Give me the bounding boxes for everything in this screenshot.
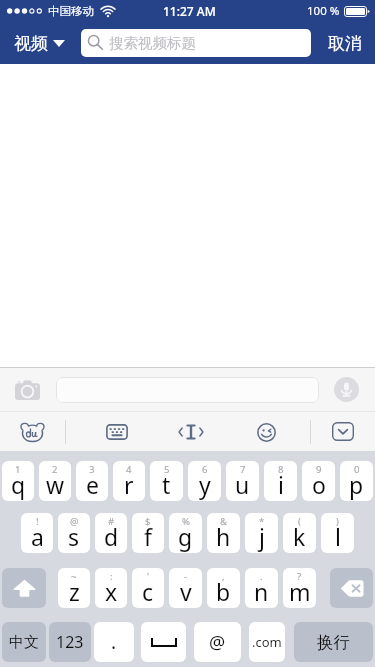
button[interactable]: 1 xyxy=(2,461,34,501)
staticText: h xyxy=(216,521,231,552)
button[interactable]: 7 xyxy=(226,461,259,501)
staticText: 搜索视频标题 xyxy=(109,34,196,52)
button[interactable]: 搜索视频标题 xyxy=(81,29,311,57)
staticText: s xyxy=(68,521,80,552)
button[interactable]: 取消 xyxy=(311,22,375,64)
staticText: y xyxy=(199,469,211,500)
button[interactable]: 5 xyxy=(150,461,183,501)
staticText: ~ xyxy=(71,570,77,583)
button[interactable]: 2 xyxy=(39,461,71,501)
button[interactable]: ~ xyxy=(58,568,90,608)
staticText: . xyxy=(111,629,117,655)
button[interactable]: . xyxy=(94,622,134,662)
button[interactable]: & xyxy=(207,513,240,553)
button[interactable]: 6 xyxy=(188,461,221,501)
button[interactable]: 9 xyxy=(302,461,335,501)
staticText: j xyxy=(259,521,265,552)
button[interactable]: @ xyxy=(58,513,90,553)
button[interactable] xyxy=(56,377,319,403)
staticText: 1 xyxy=(15,463,21,476)
staticText: t xyxy=(162,469,171,500)
staticText: q xyxy=(11,469,26,500)
button[interactable]: * xyxy=(245,513,278,553)
staticText: l xyxy=(335,521,341,552)
staticText: 换行 xyxy=(317,632,350,653)
staticText: 11:27 AM xyxy=(163,3,216,19)
staticText: m xyxy=(289,576,311,607)
button[interactable]: 0 xyxy=(340,461,373,501)
staticText: 中文 xyxy=(9,633,39,652)
staticText: f xyxy=(144,521,152,552)
staticText: z xyxy=(69,576,80,607)
button[interactable]: Voice input xyxy=(334,377,359,402)
button[interactable]: 8 xyxy=(264,461,297,501)
staticText: w xyxy=(46,469,65,500)
button[interactable]: Keyboard layout xyxy=(100,415,134,449)
staticText: ? xyxy=(297,570,302,583)
staticText: 6 xyxy=(202,463,208,476)
button[interactable]: Emoji xyxy=(249,415,283,449)
staticText: k xyxy=(293,521,306,552)
staticText: a xyxy=(31,521,44,552)
button[interactable]: 中文 xyxy=(2,622,46,662)
staticText: i xyxy=(278,469,284,500)
staticText: 4 xyxy=(126,463,132,476)
button[interactable]: Hide keyboard xyxy=(311,412,375,451)
staticText: p xyxy=(349,469,364,500)
button[interactable]: Input method xyxy=(0,412,65,451)
button[interactable]: . xyxy=(245,568,278,608)
staticText: & xyxy=(220,515,227,528)
staticText: @ xyxy=(209,630,226,655)
staticText: : xyxy=(110,570,113,583)
button[interactable]: 123 xyxy=(49,622,91,662)
staticText: @ xyxy=(70,515,79,528)
button[interactable]: , xyxy=(207,568,240,608)
staticText: . xyxy=(260,570,263,583)
button[interactable]: 换行 xyxy=(294,622,373,662)
button[interactable]: Backspace xyxy=(330,568,373,608)
staticText: 0 xyxy=(354,463,360,476)
staticText: $ xyxy=(145,515,151,528)
staticText: r xyxy=(124,469,134,500)
button[interactable]: ! xyxy=(21,513,53,553)
staticText: 100 % xyxy=(307,3,340,19)
button[interactable]: % xyxy=(169,513,202,553)
staticText: n xyxy=(254,576,269,607)
button[interactable]: Move cursor xyxy=(174,415,208,449)
button[interactable]: # xyxy=(95,513,127,553)
staticText: .com xyxy=(252,633,282,651)
staticText: c xyxy=(142,576,154,607)
staticText: ) xyxy=(336,515,339,528)
staticText: ! xyxy=(36,515,39,528)
staticText: ( xyxy=(298,515,301,528)
button[interactable]: : xyxy=(95,568,127,608)
button[interactable]: @ xyxy=(194,622,241,662)
staticText: 5 xyxy=(164,463,170,476)
staticText: 8 xyxy=(278,463,284,476)
button[interactable]: ' xyxy=(132,568,164,608)
staticText: % xyxy=(182,515,190,528)
button[interactable]: .com xyxy=(249,622,285,662)
button[interactable]: ) xyxy=(321,513,354,553)
button[interactable]: 视频 xyxy=(0,22,81,64)
button[interactable]: Space xyxy=(141,622,186,662)
staticText: 7 xyxy=(240,463,246,476)
button[interactable]: Camera xyxy=(15,379,40,400)
staticText: # xyxy=(108,515,115,528)
staticText: v xyxy=(180,576,192,607)
staticText: ' xyxy=(147,570,150,583)
staticText: 取消 xyxy=(328,33,362,54)
staticText: 2 xyxy=(52,463,58,476)
button[interactable]: ( xyxy=(283,513,316,553)
button[interactable]: 3 xyxy=(76,461,108,501)
button[interactable]: ? xyxy=(283,568,316,608)
staticText: 中国移动 xyxy=(48,4,94,18)
staticText: 3 xyxy=(89,463,95,476)
button[interactable]: Shift xyxy=(2,568,46,608)
staticText: o xyxy=(312,469,326,500)
button[interactable]: $ xyxy=(132,513,164,553)
button[interactable]: - xyxy=(169,568,202,608)
staticText: , xyxy=(222,570,225,583)
button[interactable]: 4 xyxy=(113,461,145,501)
staticText: u xyxy=(235,469,250,500)
